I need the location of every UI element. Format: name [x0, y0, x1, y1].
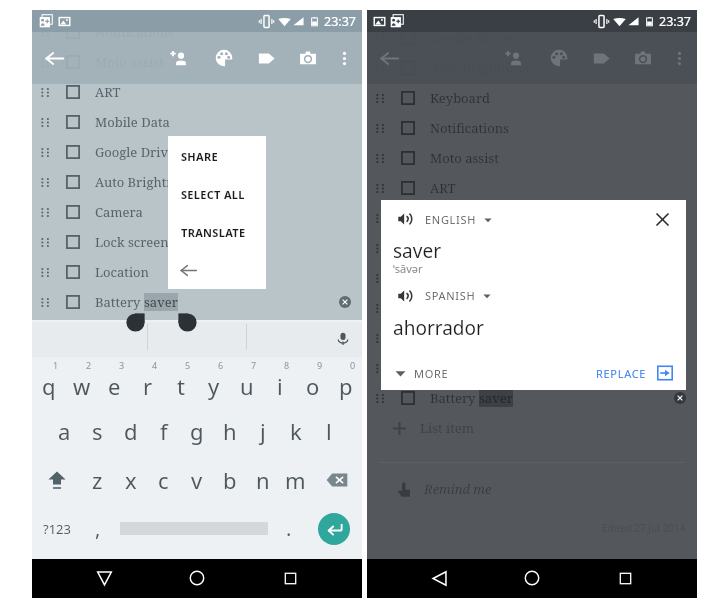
button[interactable]: Location [367, 353, 697, 383]
staticText: ahorrador [393, 315, 484, 341]
button[interactable]: . [273, 504, 305, 553]
button[interactable]: Back [421, 560, 457, 596]
button[interactable]: Remove [334, 291, 356, 313]
button[interactable]: Shift [32, 455, 81, 504]
button[interactable]: SPANISH [425, 284, 491, 307]
button[interactable]: Listen English [394, 208, 416, 230]
button[interactable]: Recents [272, 560, 308, 596]
button[interactable]: 4 [131, 357, 164, 406]
button[interactable]: Camera [293, 43, 323, 73]
button[interactable]: Location [32, 257, 362, 287]
button[interactable]: x [114, 455, 147, 504]
button[interactable]: 1 [32, 357, 65, 406]
button[interactable]: 2 [65, 357, 98, 406]
button[interactable]: TRANSLATE [168, 213, 266, 251]
button[interactable]: Delete [312, 455, 362, 504]
button[interactable]: Add collaborator [164, 43, 194, 73]
button[interactable]: Voice input [332, 328, 354, 350]
button[interactable]: Moto assist [32, 47, 362, 77]
button[interactable]: Google Drive [32, 137, 362, 167]
button[interactable]: 5 [164, 357, 197, 406]
button[interactable]: Camera [32, 197, 362, 227]
button[interactable]: Home [179, 560, 215, 596]
button[interactable]: a [48, 406, 81, 455]
button[interactable]: Hide keyboard [86, 560, 122, 596]
button[interactable]: Battery [32, 287, 362, 317]
button[interactable]: REPLACE [590, 360, 686, 386]
button[interactable]: More options [329, 43, 359, 73]
staticText: ENGLISH [425, 212, 477, 227]
staticText: Location [430, 359, 484, 377]
button[interactable]: Space [114, 504, 273, 553]
button[interactable]: SHARE [168, 137, 266, 175]
button[interactable]: Change colour [544, 43, 574, 73]
button[interactable]: m [279, 455, 312, 504]
button[interactable]: SELECT ALL [168, 175, 266, 213]
button[interactable]: Battery [367, 383, 697, 413]
button[interactable]: Google Drive [367, 23, 697, 53]
staticText: saver [479, 389, 513, 407]
staticText: r [143, 371, 153, 401]
button[interactable]: j [246, 406, 279, 455]
button[interactable]: 0 [329, 357, 362, 406]
button[interactable]: 9 [296, 357, 329, 406]
button[interactable]: l [312, 406, 345, 455]
staticText: 2 [86, 359, 92, 371]
button[interactable]: 3 [98, 357, 131, 406]
button[interactable]: Close [647, 205, 677, 233]
button[interactable]: Change colour [209, 43, 239, 73]
button[interactable]: , [82, 504, 114, 553]
button[interactable]: n [246, 455, 279, 504]
button[interactable]: Notifications [32, 17, 362, 47]
button[interactable]: Back [374, 43, 404, 73]
button[interactable]: d [114, 406, 147, 455]
button[interactable]: v [180, 455, 213, 504]
button[interactable]: c [147, 455, 180, 504]
button[interactable]: 7 [230, 357, 263, 406]
button[interactable]: Home [514, 560, 550, 596]
button[interactable]: ?123 [32, 504, 82, 553]
button[interactable]: Auto Brightness [367, 263, 697, 293]
button[interactable]: s [81, 406, 114, 455]
button[interactable]: Lock screen [367, 323, 697, 353]
button[interactable]: ART [32, 77, 362, 107]
button[interactable]: f [147, 406, 180, 455]
button[interactable]: k [279, 406, 312, 455]
staticText: TRANSLATE [181, 225, 246, 240]
button[interactable]: Google Drive [367, 233, 697, 263]
button[interactable]: b [213, 455, 246, 504]
button[interactable]: Remind me [367, 475, 697, 503]
button[interactable]: Back [168, 251, 266, 289]
button[interactable]: Add collaborator [499, 43, 529, 73]
button[interactable]: Auto Brightness [367, 53, 697, 83]
button[interactable]: 6 [197, 357, 230, 406]
button[interactable]: h [213, 406, 246, 455]
staticText: u [240, 371, 254, 401]
button[interactable]: Camera [367, 293, 697, 323]
button[interactable]: More options [664, 43, 694, 73]
button[interactable]: Lock screen [32, 227, 362, 257]
staticText: Mobile Data [430, 209, 505, 227]
button[interactable]: Back [39, 43, 69, 73]
button[interactable]: z [81, 455, 114, 504]
button[interactable]: Recents [607, 560, 643, 596]
button[interactable]: Mobile Data [367, 203, 697, 233]
button[interactable]: g [180, 406, 213, 455]
button[interactable]: ENGLISH [425, 208, 492, 231]
button[interactable]: Moto assist [367, 143, 697, 173]
button[interactable]: Label [251, 43, 281, 73]
button[interactable]: Listen Spanish [394, 285, 416, 307]
button[interactable]: 8 [263, 357, 296, 406]
button[interactable]: Keyboard [367, 83, 697, 113]
button[interactable]: ART [367, 173, 697, 203]
button[interactable]: Notifications [367, 113, 697, 143]
button[interactable]: MORE [381, 361, 455, 386]
button[interactable]: Remove [669, 387, 691, 409]
button[interactable]: Camera [628, 43, 658, 73]
button[interactable]: Enter [305, 504, 362, 553]
button[interactable]: Mobile Data [32, 107, 362, 137]
button[interactable]: Label [586, 43, 616, 73]
staticText: Google Drive [95, 143, 175, 161]
button[interactable]: Auto Brightness [32, 167, 362, 197]
